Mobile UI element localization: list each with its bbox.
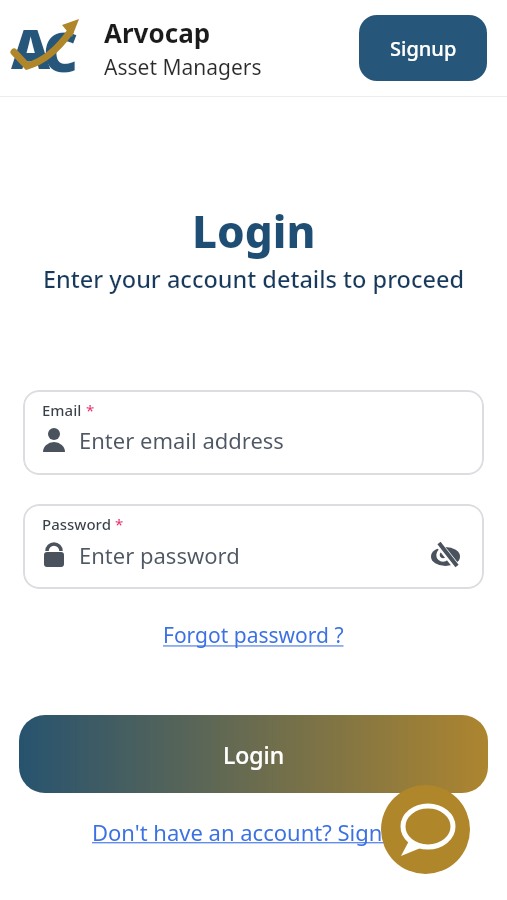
button[interactable]: Signup <box>359 15 487 81</box>
staticText: Login <box>192 201 316 261</box>
button[interactable]: Password <box>23 504 484 589</box>
staticText: Login <box>223 739 285 770</box>
staticText: Enter email address <box>79 425 464 455</box>
button[interactable] <box>381 785 470 874</box>
button[interactable]: Forgot password ? <box>163 621 344 650</box>
staticText: Password <box>42 514 111 534</box>
button[interactable]: Don't have an account? Sign up <box>92 817 416 847</box>
staticText: * <box>111 514 124 534</box>
button[interactable]: Email <box>23 390 484 475</box>
staticText: A <box>11 11 51 75</box>
staticText: Signup <box>390 35 457 62</box>
staticText: Email <box>42 400 82 420</box>
staticText: Arvocap <box>104 15 211 50</box>
staticText: C <box>43 14 79 78</box>
staticText: Enter your account details to proceed <box>43 263 465 295</box>
button[interactable]: Login <box>19 715 488 793</box>
staticText: Asset Managers <box>104 53 262 82</box>
staticText: * <box>82 400 95 420</box>
staticText: Enter password <box>79 540 428 570</box>
